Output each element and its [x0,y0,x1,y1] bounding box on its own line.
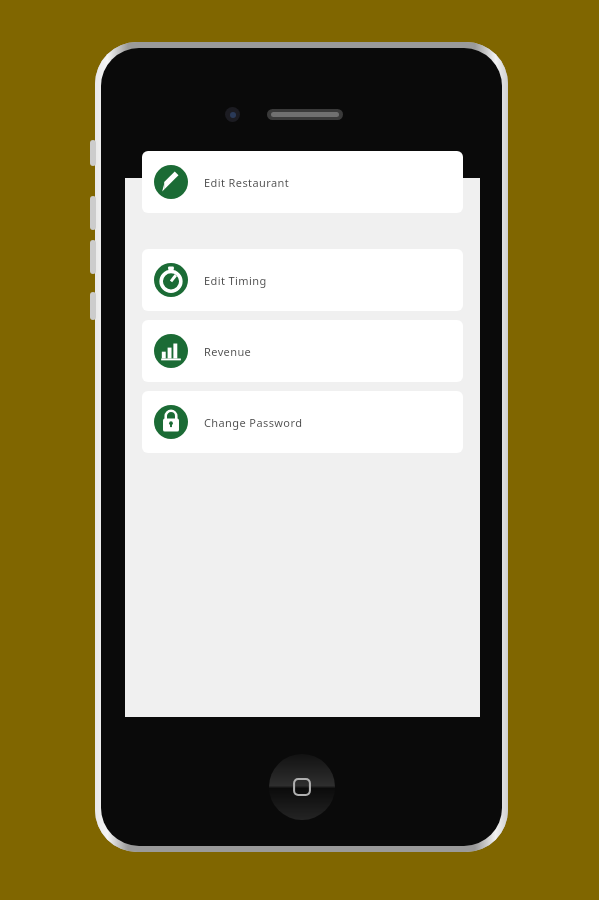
staticText: Edit Timing [204,273,267,288]
button[interactable]: Home [269,754,335,820]
staticText: Edit Restaurant [204,175,290,190]
button[interactable]: Revenue [142,320,463,382]
button[interactable]: Edit Restaurant [142,151,463,213]
button[interactable]: Edit Timing [142,249,463,311]
staticText: Revenue [204,344,252,359]
button[interactable]: Change Password [142,391,463,453]
staticText: Change Password [204,415,303,430]
